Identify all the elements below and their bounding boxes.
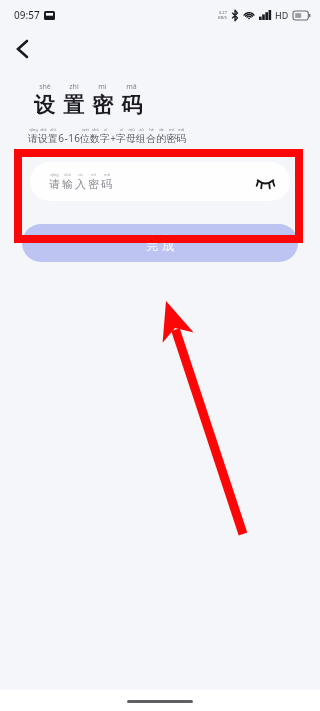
- staticText: 1: [68, 131, 74, 145]
- staticText: HD: [275, 9, 289, 21]
- staticText: 的: [156, 132, 166, 145]
- staticText: mǎ: [104, 172, 110, 177]
- staticText: 字: [116, 132, 126, 145]
- staticText: qǐng: [29, 127, 38, 132]
- staticText: 数: [90, 132, 100, 145]
- staticText: 设: [34, 92, 55, 118]
- staticText: shù: [92, 127, 99, 132]
- staticText: 请: [28, 132, 38, 145]
- button[interactable]: Back: [0, 30, 44, 68]
- staticText: 密: [88, 177, 99, 191]
- staticText: 字: [100, 132, 110, 145]
- staticText: mǔ: [128, 127, 135, 132]
- staticText: KB/S: [218, 15, 227, 20]
- staticText: zì: [120, 127, 123, 132]
- staticText: 入: [75, 177, 86, 191]
- staticText: 6: [58, 131, 64, 145]
- staticText: hé: [149, 127, 154, 132]
- staticText: 6: [74, 131, 80, 145]
- staticText: zǔ: [139, 127, 144, 132]
- staticText: mì: [169, 127, 174, 132]
- staticText: 密: [166, 132, 176, 145]
- staticText: zì: [104, 127, 107, 132]
- staticText: de: [159, 127, 164, 132]
- staticText: shè: [39, 82, 51, 92]
- staticText: mì: [98, 82, 107, 92]
- staticText: +: [110, 131, 116, 145]
- staticText: 置: [63, 92, 84, 118]
- button[interactable]: Show password: [248, 165, 282, 199]
- staticText: 位: [80, 132, 90, 145]
- staticText: wèi: [82, 127, 89, 132]
- staticText: zhì: [69, 82, 79, 92]
- staticText: 合: [146, 132, 156, 145]
- staticText: 设: [38, 132, 48, 145]
- staticText: 09:57: [14, 8, 40, 22]
- staticText: wán: [148, 233, 156, 238]
- staticText: 成: [162, 238, 174, 253]
- staticText: zhì: [50, 127, 56, 132]
- staticText: chéng: [162, 233, 174, 238]
- button[interactable]: qǐng: [30, 162, 290, 201]
- staticText: mǎ: [178, 127, 184, 132]
- staticText: -: [64, 131, 68, 145]
- staticText: mì: [91, 172, 96, 177]
- staticText: 0.27: [219, 10, 227, 15]
- staticText: 母: [126, 132, 136, 145]
- staticText: shū: [64, 172, 71, 177]
- staticText: 码: [176, 132, 186, 145]
- staticText: 输: [62, 177, 73, 191]
- staticText: 密: [92, 92, 113, 118]
- staticText: 请: [49, 177, 60, 191]
- staticText: 码: [121, 92, 142, 118]
- staticText: 组: [136, 132, 146, 145]
- staticText: rù: [78, 172, 83, 177]
- staticText: qǐng: [50, 172, 59, 177]
- staticText: shè: [40, 127, 47, 132]
- staticText: mǎ: [126, 82, 137, 92]
- staticText: 完: [146, 238, 158, 253]
- button[interactable]: wán: [22, 224, 298, 262]
- staticText: 置: [48, 132, 58, 145]
- staticText: 码: [101, 177, 112, 191]
